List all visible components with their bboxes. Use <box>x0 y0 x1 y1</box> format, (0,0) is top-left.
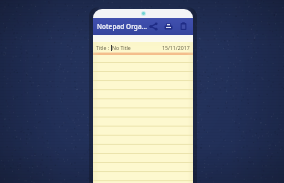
staticText: No Title <box>112 44 131 51</box>
button[interactable]: Save <box>162 18 175 35</box>
button[interactable]: Title : <box>93 42 193 53</box>
staticText: 15/11/2017 <box>162 44 190 51</box>
staticText: Title : <box>96 44 111 51</box>
button[interactable]: Notepad Organiz... <box>97 18 147 35</box>
button[interactable]: Share <box>147 18 160 35</box>
button[interactable]: Delete note <box>177 18 190 35</box>
staticText: Notepad Organiz... <box>97 22 147 31</box>
